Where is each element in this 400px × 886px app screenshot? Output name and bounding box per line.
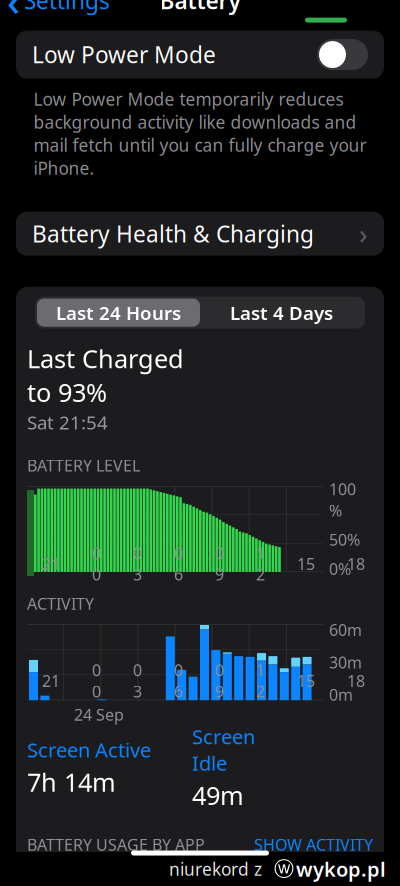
staticText: 21 <box>42 553 60 574</box>
staticText: 30m <box>329 652 362 673</box>
button[interactable]: Battery Health & Charging <box>16 212 384 256</box>
staticText: 09 <box>215 542 224 585</box>
staticText: wykop.pl <box>296 856 386 882</box>
button[interactable]: ‹ <box>0 0 110 31</box>
staticText: 03 <box>133 659 142 702</box>
staticText: SHOW ACTIVITY <box>254 834 373 855</box>
staticText: 0m <box>329 684 353 705</box>
staticText: 18 <box>347 670 365 691</box>
staticText: niurekord z <box>169 857 262 880</box>
staticText: 100% <box>329 478 356 521</box>
staticText: 50% <box>329 529 360 550</box>
button[interactable]: Last 24 Hours <box>37 299 200 327</box>
staticText: Screen Idle <box>192 723 255 776</box>
staticText: 21 <box>42 670 60 691</box>
staticText: 06 <box>174 659 183 702</box>
staticText: ‹ <box>7 0 20 27</box>
staticText: Last 4 Days <box>230 300 333 325</box>
staticText: 49m <box>192 778 244 812</box>
staticText: BATTERY LEVEL <box>27 455 140 476</box>
staticText: 15 <box>297 670 315 691</box>
staticText: 7h 14m <box>27 765 116 799</box>
staticText: › <box>359 216 368 251</box>
staticText: BATTERY USAGE BY APP <box>27 834 205 855</box>
staticText: Last 24 Hours <box>56 300 181 325</box>
staticText: 06 <box>174 542 183 585</box>
staticText: ⓦ <box>262 857 294 881</box>
staticText: 00 <box>92 659 101 702</box>
staticText: Instagram <box>73 873 184 886</box>
staticText: 09 <box>215 659 224 702</box>
staticText: 03 <box>133 542 142 585</box>
staticText: 18 <box>347 553 365 574</box>
button[interactable]: Low Power Mode <box>16 31 384 79</box>
button[interactable]: Last 4 Days <box>200 299 363 327</box>
staticText: 60m <box>329 619 362 640</box>
staticText: 12 <box>256 542 265 585</box>
button[interactable]: SHOW ACTIVITY <box>254 834 373 855</box>
staticText: 00 <box>92 542 101 585</box>
staticText: 15 <box>297 553 315 574</box>
staticText: 24 Sep <box>74 704 124 725</box>
staticText: 0% <box>329 558 351 579</box>
staticText: Screen Active <box>27 736 151 763</box>
staticText: Sat 21:54 <box>27 410 108 435</box>
staticText: ACTIVITY <box>27 593 94 614</box>
staticText: 28% <box>328 873 373 886</box>
staticText: Battery Health & Charging <box>32 219 314 249</box>
staticText: Low Power Mode temporarily reduces backg… <box>33 88 366 180</box>
staticText: Settings <box>24 0 110 16</box>
staticText: Low Power Mode <box>32 39 216 70</box>
staticText: Last Charged to 93% <box>27 342 184 409</box>
staticText: Battery <box>159 0 240 16</box>
staticText: 12 <box>256 659 265 702</box>
button[interactable]: Instagram <box>16 865 384 886</box>
